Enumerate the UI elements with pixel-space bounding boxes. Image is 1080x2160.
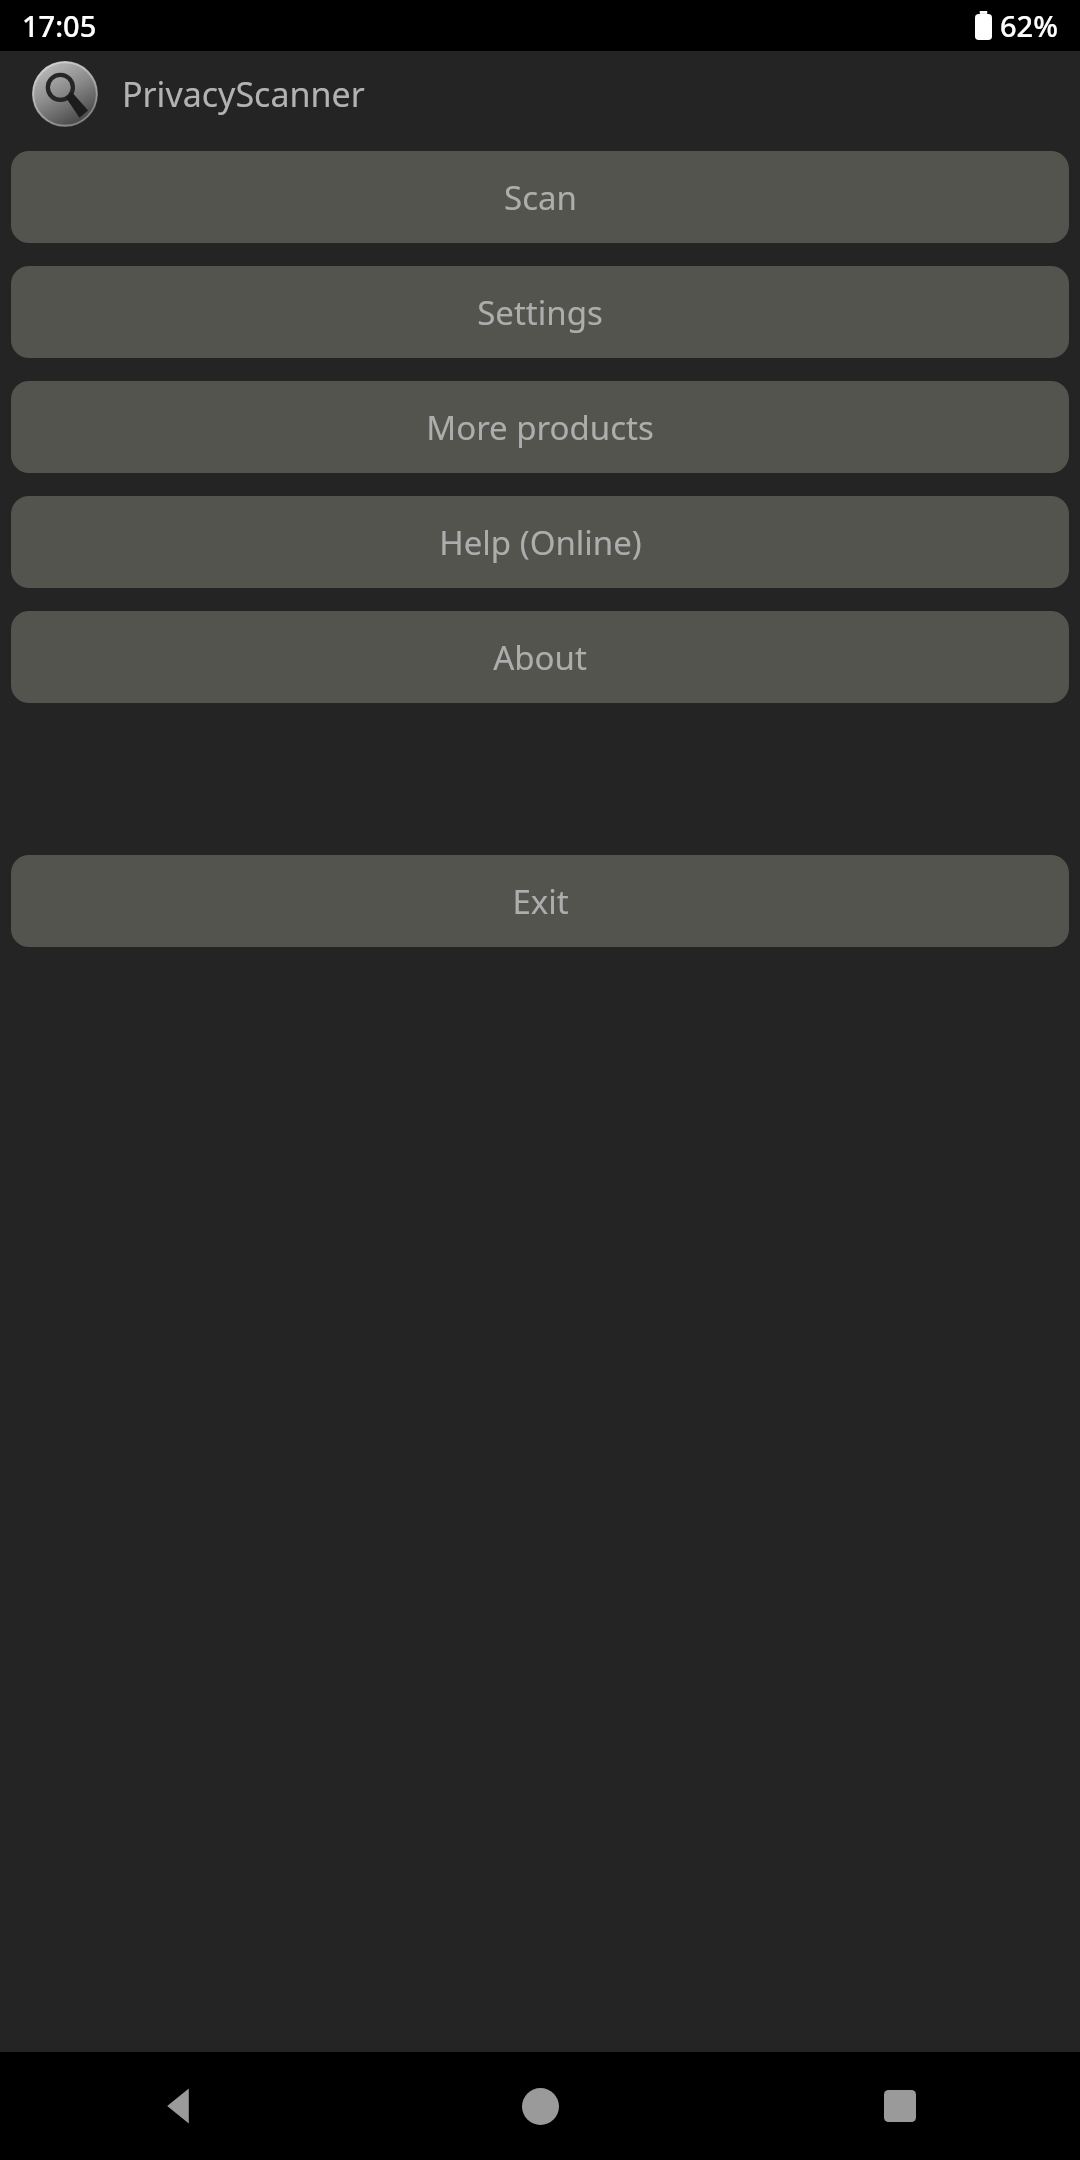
- button[interactable]: Recent apps: [846, 2052, 954, 2160]
- staticText: 62%: [1000, 6, 1058, 45]
- button[interactable]: About: [11, 611, 1069, 703]
- button[interactable]: Back: [126, 2052, 234, 2160]
- button[interactable]: Settings: [11, 266, 1069, 358]
- button[interactable]: Exit: [11, 855, 1069, 947]
- button[interactable]: More products: [11, 381, 1069, 473]
- button[interactable]: Help (Online): [11, 496, 1069, 588]
- staticText: About: [493, 635, 587, 680]
- staticText: More products: [426, 405, 654, 450]
- staticText: PrivacyScanner: [122, 71, 365, 117]
- staticText: Settings: [477, 290, 603, 335]
- button[interactable]: Home: [486, 2052, 594, 2160]
- staticText: 17:05: [22, 6, 97, 45]
- staticText: Scan: [504, 175, 577, 220]
- button[interactable]: Scan: [11, 151, 1069, 243]
- staticText: Exit: [512, 879, 569, 924]
- staticText: Help (Online): [439, 520, 642, 565]
- other: PrivacyScanner icon: [32, 61, 98, 127]
